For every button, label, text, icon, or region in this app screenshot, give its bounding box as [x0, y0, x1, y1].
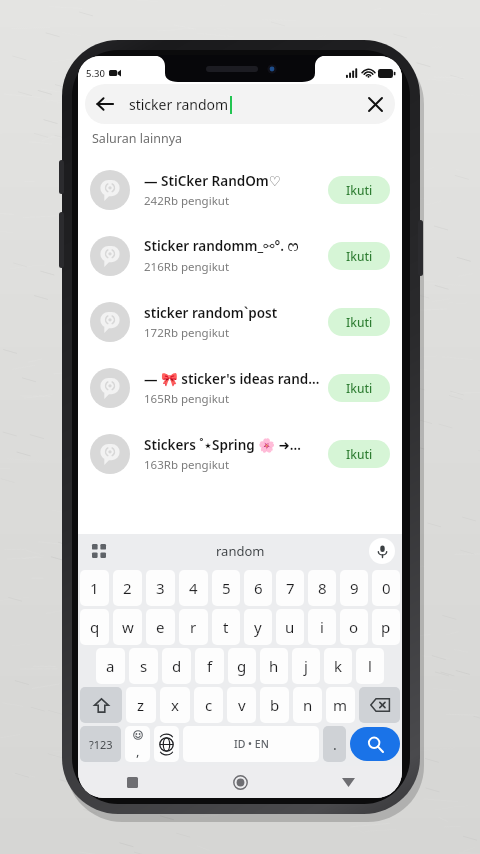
staticText: d [172, 656, 182, 676]
button[interactable]: sticker random`post [78, 289, 402, 355]
button[interactable]: a [96, 648, 125, 684]
button[interactable]: Voice input [369, 538, 395, 564]
button[interactable]: 1 [80, 570, 109, 606]
button[interactable]: z [126, 687, 156, 723]
staticText: i [320, 617, 324, 637]
staticText: o [349, 617, 359, 637]
button[interactable]: 2 [113, 570, 142, 606]
button[interactable]: Backspace [359, 687, 400, 723]
staticText: 3 [156, 578, 165, 598]
button[interactable]: — 🎀 sticker's ideas rand… [78, 355, 402, 421]
staticText: j [304, 656, 308, 676]
button[interactable]: Ikuti [328, 374, 390, 402]
staticText: 242Rb pengikut [144, 193, 230, 209]
button[interactable]: 4 [179, 570, 208, 606]
staticText: 7 [286, 578, 295, 598]
staticText: ID • EN [234, 737, 269, 751]
button[interactable]: Ikuti [328, 176, 390, 204]
button[interactable]: u [276, 609, 304, 645]
button[interactable]: x [160, 687, 190, 723]
button[interactable]: Search [350, 727, 400, 761]
button[interactable]: c [194, 687, 223, 723]
staticText: — 🎀 sticker's ideas rand… [144, 370, 320, 388]
button[interactable]: g [228, 648, 256, 684]
button[interactable]: b [260, 687, 289, 723]
button[interactable]: 7 [276, 570, 304, 606]
button[interactable]: Ikuti [328, 308, 390, 336]
button[interactable]: Change language [154, 726, 179, 762]
button[interactable]: k [324, 648, 352, 684]
staticText: sticker random [129, 95, 229, 114]
button[interactable]: 8 [308, 570, 336, 606]
staticText: b [270, 695, 280, 715]
staticText: 5 [222, 578, 231, 598]
button[interactable]: w [113, 609, 142, 645]
button[interactable]: Emoji and comma [125, 726, 150, 762]
button[interactable]: l [356, 648, 384, 684]
button[interactable]: 9 [340, 570, 368, 606]
staticText: 4 [189, 578, 198, 598]
staticText: k [334, 656, 343, 676]
staticText: 1 [90, 578, 99, 598]
staticText: x [171, 695, 179, 715]
button[interactable]: p [372, 609, 400, 645]
button[interactable]: d [162, 648, 191, 684]
button[interactable]: Back [333, 767, 363, 797]
staticText: 0 [382, 578, 391, 598]
button[interactable]: — StiCker RandOm♡ [78, 157, 402, 223]
button[interactable]: . [323, 726, 346, 762]
button[interactable]: ?123 [80, 726, 121, 762]
staticText: random [216, 542, 265, 560]
button[interactable]: v [227, 687, 256, 723]
staticText: s [140, 656, 148, 676]
staticText: u [285, 617, 295, 637]
button[interactable]: Clear search [355, 84, 395, 124]
staticText: f [207, 656, 213, 676]
staticText: Ikuti [346, 380, 373, 396]
button[interactable]: m [326, 687, 355, 723]
staticText: Ikuti [346, 248, 373, 264]
button[interactable]: ID • EN [183, 726, 319, 762]
button[interactable]: q [80, 609, 109, 645]
staticText: 6 [254, 578, 263, 598]
staticText: — StiCker RandOm♡ [144, 172, 281, 190]
button[interactable]: Home [225, 767, 255, 797]
button[interactable]: n [293, 687, 322, 723]
button[interactable]: Stickers ˚⋆Spring 🌸 ➜… [78, 421, 402, 487]
button[interactable]: 5 [212, 570, 240, 606]
button[interactable]: y [244, 609, 272, 645]
staticText: ?123 [89, 737, 113, 752]
staticText: g [237, 656, 247, 676]
staticText: 9 [350, 578, 359, 598]
button[interactable]: 3 [146, 570, 175, 606]
button[interactable]: 6 [244, 570, 272, 606]
button[interactable]: Ikuti [328, 440, 390, 468]
button[interactable]: r [179, 609, 208, 645]
button[interactable]: Shift [80, 687, 122, 723]
button[interactable]: e [146, 609, 175, 645]
button[interactable]: 0 [372, 570, 400, 606]
staticText: Ikuti [346, 446, 373, 462]
staticText: 2 [123, 578, 132, 598]
button[interactable]: random [194, 537, 287, 565]
button[interactable]: Sticker randomm_⚯°. ෆ [78, 223, 402, 289]
staticText: Saluran lainnya [92, 130, 183, 147]
button[interactable]: h [260, 648, 288, 684]
staticText: e [156, 617, 165, 637]
staticText: 8 [318, 578, 327, 598]
button[interactable]: o [340, 609, 368, 645]
button[interactable]: t [212, 609, 240, 645]
staticText: a [106, 656, 115, 676]
button[interactable]: Ikuti [328, 242, 390, 270]
staticText: 5.30 [86, 67, 105, 80]
staticText: c [205, 695, 213, 715]
button[interactable]: s [129, 648, 158, 684]
button[interactable]: Clipboard [86, 538, 112, 564]
staticText: p [381, 617, 391, 637]
button[interactable]: Back [85, 84, 125, 124]
staticText: l [368, 656, 372, 676]
button[interactable]: f [195, 648, 224, 684]
button[interactable]: j [292, 648, 320, 684]
button[interactable]: Recents [117, 767, 147, 797]
button[interactable]: i [308, 609, 336, 645]
